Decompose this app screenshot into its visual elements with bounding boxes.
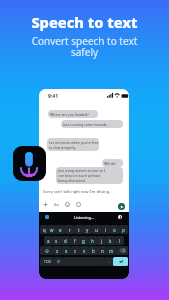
button[interactable]: Let me know when you're free to chat pro… xyxy=(47,138,99,151)
staticText: Listening... xyxy=(39,215,129,220)
button[interactable]: r xyxy=(65,225,74,234)
button[interactable]: u xyxy=(92,225,101,234)
staticText: Just using speech-to-text so I can keep … xyxy=(58,168,106,183)
staticText: q xyxy=(43,227,46,233)
button[interactable]: s xyxy=(52,236,61,245)
button[interactable]: v xyxy=(80,246,89,255)
button[interactable]: j xyxy=(97,236,106,245)
staticText: Let me know when you're free to chat pro… xyxy=(49,140,99,150)
staticText: h xyxy=(91,238,94,244)
staticText: v xyxy=(83,248,86,254)
button[interactable]: e xyxy=(56,225,65,234)
staticText: k xyxy=(109,238,112,244)
staticText: Sorry can't talk right now I'm driving.. xyxy=(43,189,112,194)
staticText: l xyxy=(119,238,121,244)
button[interactable]: Switch keyboard xyxy=(45,215,49,219)
button[interactable]: b xyxy=(89,246,98,255)
staticText: n xyxy=(101,248,104,254)
button[interactable]: d xyxy=(61,236,70,245)
staticText: x xyxy=(65,248,68,254)
staticText: b xyxy=(92,248,95,254)
staticText: t xyxy=(78,227,80,233)
button[interactable]: Text format xyxy=(53,201,60,208)
staticText: o xyxy=(113,227,116,233)
staticText: w xyxy=(50,227,54,233)
staticText: . xyxy=(108,259,110,264)
staticText: g xyxy=(82,238,85,244)
button[interactable]: a xyxy=(44,236,52,245)
staticText: u xyxy=(95,227,98,233)
button[interactable]: p xyxy=(119,225,128,234)
staticText: Aa xyxy=(54,202,59,207)
button[interactable]: GIF xyxy=(75,201,82,208)
button[interactable]: Where are you headed? xyxy=(48,110,98,118)
button[interactable]: Send xyxy=(118,203,125,210)
staticText: Just running some errands. xyxy=(63,122,108,127)
staticText: i xyxy=(105,227,107,233)
button[interactable]: . xyxy=(104,257,113,266)
staticText: p xyxy=(122,227,125,233)
button[interactable]: Will do! xyxy=(102,159,123,167)
staticText: r xyxy=(69,227,71,233)
button[interactable]: Add xyxy=(42,201,49,208)
staticText: z xyxy=(56,248,59,254)
button[interactable]: Emoji xyxy=(54,257,63,266)
button[interactable]: i xyxy=(101,225,110,234)
button[interactable]: c xyxy=(71,246,80,255)
button[interactable]: Shift xyxy=(40,246,53,255)
staticText: e xyxy=(59,227,62,233)
button[interactable]: y xyxy=(83,225,92,234)
button[interactable]: n xyxy=(98,246,107,255)
staticText: Speech to text xyxy=(0,12,169,32)
button[interactable]: Just using speech-to-text so I can keep … xyxy=(56,167,123,184)
staticText: d xyxy=(64,238,67,244)
button[interactable]: w xyxy=(48,225,56,234)
button[interactable]: Just running some errands. xyxy=(61,120,123,128)
button[interactable]: g xyxy=(79,236,88,245)
button[interactable]: t xyxy=(74,225,83,234)
staticText: f xyxy=(74,238,76,244)
staticText: Where are you headed? xyxy=(50,112,89,117)
staticText: c xyxy=(74,248,77,254)
staticText: 9:41 xyxy=(48,93,58,100)
staticText: j xyxy=(101,238,103,244)
button[interactable]: Backspace xyxy=(116,246,128,255)
button[interactable]: Microphone xyxy=(118,215,122,219)
button[interactable]: x xyxy=(62,246,71,255)
button[interactable]: Speech to text app icon xyxy=(13,146,46,181)
staticText: a xyxy=(47,238,50,244)
button[interactable]: Enter xyxy=(113,257,128,266)
staticText: Convert speech to text safely xyxy=(0,34,169,59)
button[interactable]: o xyxy=(110,225,119,234)
button[interactable]: m xyxy=(107,246,116,255)
button[interactable]: l xyxy=(115,236,124,245)
button[interactable]: h xyxy=(88,236,97,245)
staticText: s xyxy=(55,238,58,244)
button[interactable]: ?123 xyxy=(40,257,54,266)
button[interactable]: f xyxy=(70,236,79,245)
button[interactable]: q xyxy=(40,225,48,234)
staticText: ?123 xyxy=(44,260,51,264)
staticText: m xyxy=(109,248,114,254)
staticText: y xyxy=(86,227,89,233)
button[interactable]: Stickers xyxy=(64,201,71,208)
button[interactable]: k xyxy=(106,236,115,245)
button[interactable]: z xyxy=(53,246,62,255)
staticText: Will do! xyxy=(104,161,117,166)
